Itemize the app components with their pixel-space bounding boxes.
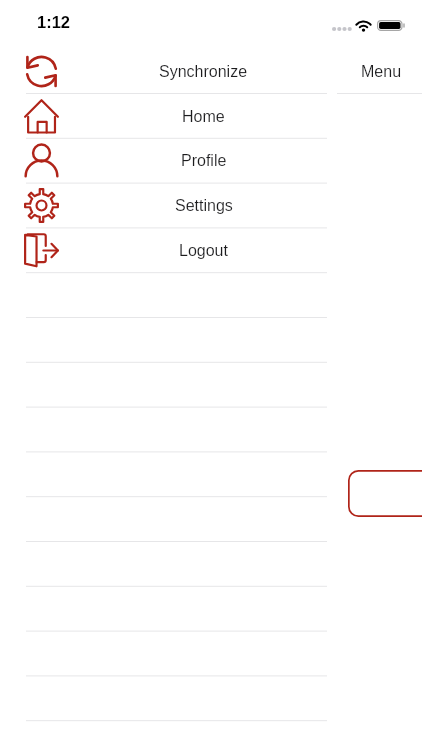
button[interactable]: Home (0, 94, 327, 139)
other: Logout (24, 233, 59, 268)
other: Settings (24, 188, 59, 223)
staticText: Profile (181, 152, 227, 170)
staticText: Menu (361, 63, 402, 81)
button[interactable]: Profile (0, 138, 327, 183)
other: Synchronize (24, 54, 59, 89)
button[interactable]: Logout (0, 228, 327, 273)
button[interactable]: Synchronize (0, 49, 327, 94)
other: Profile (24, 143, 59, 178)
button[interactable]: Menu (337, 49, 422, 94)
staticText: Synchronize (159, 63, 248, 81)
staticText: 1:12 (37, 13, 71, 31)
staticText: Settings (175, 197, 233, 215)
other: Home (24, 99, 59, 134)
staticText: Home (182, 108, 225, 126)
button[interactable]: Add (348, 470, 422, 517)
button[interactable]: Settings (0, 183, 327, 228)
staticText: Logout (179, 242, 228, 260)
